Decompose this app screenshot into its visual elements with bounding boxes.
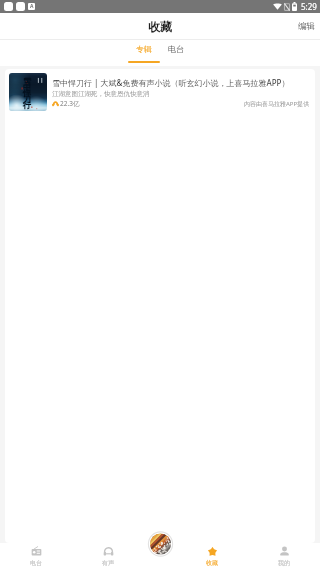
staticText: 我的 — [278, 559, 290, 567]
staticText: 有声 — [102, 559, 114, 567]
staticText: 江湖意图江湖死，快意恩仇快意消 — [52, 90, 150, 98]
staticText: 收藏 — [206, 559, 218, 567]
staticText: 22.3亿 — [60, 99, 80, 108]
staticText: 电台 — [30, 559, 42, 567]
button[interactable]: 专辑 — [128, 40, 160, 66]
staticText: 雪中悍刀行 | 大斌&免费有声小说（听玄幻小说，上喜马拉雅APP） — [52, 77, 290, 88]
button[interactable]: 收藏 — [176, 543, 248, 569]
button[interactable]: 电台 — [0, 543, 72, 569]
staticText: 电台 — [168, 44, 184, 54]
staticText: 编辑 — [298, 21, 315, 32]
staticText: 5:29 — [301, 1, 317, 12]
button[interactable]: 有声 — [72, 543, 144, 569]
button[interactable]: 雪 中 悍 刀 行 — [5, 69, 315, 543]
staticText: 内容由喜马拉雅APP提供 — [244, 100, 310, 108]
button[interactable]: 我的 — [248, 543, 320, 569]
button[interactable]: Now playing — [145, 531, 176, 557]
staticText: 收藏 — [148, 19, 172, 34]
button[interactable]: 电台 — [160, 40, 192, 66]
staticText: A — [30, 3, 34, 10]
staticText: 雪 中 悍 刀 行 — [23, 76, 31, 110]
button[interactable]: 编辑 — [290, 13, 320, 39]
staticText: 专辑 — [136, 44, 152, 54]
